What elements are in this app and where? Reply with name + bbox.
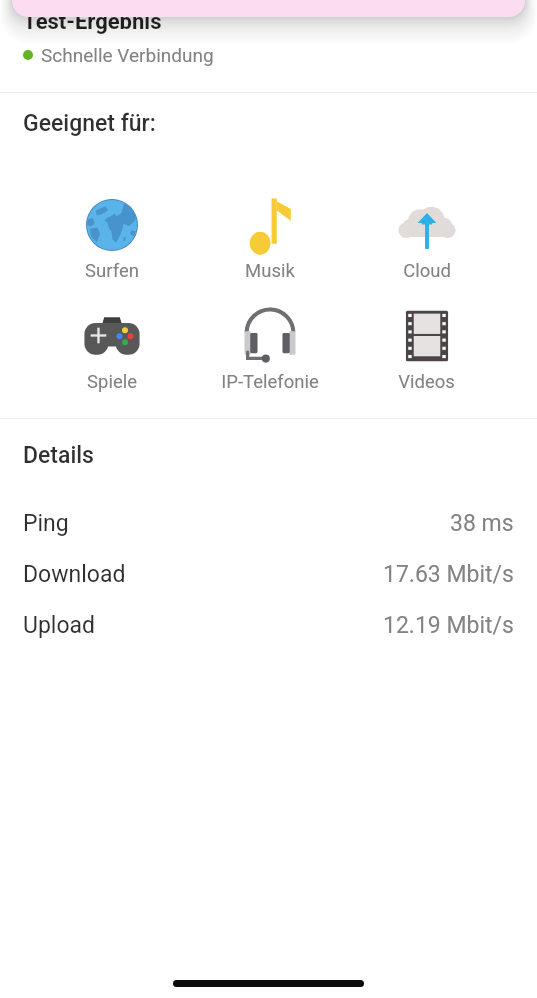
staticText: Cloud (403, 260, 451, 282)
staticText: Schnelle Verbindung (41, 44, 214, 66)
staticText: Videos (398, 371, 455, 393)
staticText: Surfen (85, 260, 139, 282)
staticText: Details (23, 442, 94, 469)
button[interactable]: IP-Telefonie (191, 309, 349, 393)
staticText: Test-Ergebnis (23, 9, 162, 35)
button[interactable]: Videos (349, 309, 504, 393)
staticText: Musik (245, 260, 295, 282)
button[interactable]: Cloud (349, 198, 504, 282)
button[interactable]: Spiele (33, 309, 191, 393)
staticText: Geeignet für: (23, 110, 156, 137)
button[interactable]: Upload (0, 600, 537, 651)
staticText: IP-Telefonie (221, 371, 319, 393)
button[interactable]: Download (0, 549, 537, 600)
button[interactable]: Ping (0, 498, 537, 549)
staticText: 17.63 Mbit/s (383, 561, 514, 588)
staticText: 38 ms (450, 510, 514, 537)
button[interactable]: Musik (191, 198, 349, 282)
staticText: Download (23, 561, 126, 588)
button[interactable]: Surfen (33, 198, 191, 282)
staticText: Spiele (87, 371, 137, 393)
staticText: 12.19 Mbit/s (383, 612, 514, 639)
staticText: Upload (23, 612, 96, 639)
staticText: Ping (23, 510, 69, 537)
